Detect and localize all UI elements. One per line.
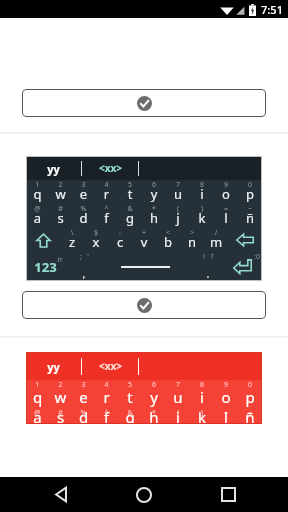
staticText: a [26,407,49,423]
staticText: k [190,209,214,227]
button[interactable]: Recent apps [205,477,251,512]
button[interactable]: # [49,408,72,424]
button[interactable]: \ [60,228,84,252]
button[interactable]: Backspace [228,228,262,252]
staticText: 8 [190,380,214,390]
button[interactable]: % [72,204,95,228]
staticText: h [142,407,166,423]
button[interactable]: 7 [166,180,190,204]
button[interactable]: ; [70,252,98,281]
button[interactable]: Home [121,477,167,512]
button[interactable]: % [72,408,95,424]
button[interactable]: 3 [72,180,95,204]
button[interactable]: * [142,408,166,424]
button[interactable]: $ [84,228,108,252]
button[interactable]: 3 [72,380,95,408]
button[interactable]: 0 [238,380,262,408]
button[interactable]: ( [166,408,190,424]
staticText: 3 [72,380,95,390]
button[interactable]: 7 [166,380,190,408]
button[interactable]: & [118,408,142,424]
staticText: x [84,233,108,251]
button[interactable]: yy [26,156,81,180]
button[interactable]: # [49,204,72,228]
staticText: ! [203,252,205,262]
button[interactable]: 4 [95,180,118,204]
button[interactable]: yy [26,352,81,380]
button[interactable]: 8 [190,380,214,408]
staticText: 7:51 [261,2,283,17]
button[interactable] [139,352,262,380]
staticText: s [49,209,72,227]
button[interactable]: < [156,228,180,252]
button[interactable]: 9 [214,380,238,408]
staticText: n [180,233,204,251]
button[interactable]: ^ [95,408,118,424]
staticText: 9 [214,180,238,190]
button[interactable]: 5 [118,380,142,408]
staticText: w [49,185,72,203]
button[interactable]: 6 [142,180,166,204]
button[interactable]: 1 [26,180,49,204]
button[interactable]: + [132,228,156,252]
button[interactable]: 9 [214,180,238,204]
staticText: , [70,266,98,281]
button[interactable]: ^ [95,204,118,228]
button[interactable]: 123 [26,252,70,281]
button[interactable]: ( [166,204,190,228]
button[interactable]: 5 [118,180,142,204]
button[interactable]: 6 [142,380,166,408]
button[interactable]: - [108,228,132,252]
staticText: ( [166,204,190,214]
staticText: q [26,387,49,407]
staticText: ~ [238,204,262,214]
staticText: * [142,408,166,418]
button[interactable]: = [214,408,238,424]
button[interactable]: Shift [26,228,60,252]
button[interactable]: @ [26,204,49,228]
staticText: - [108,228,132,238]
button[interactable]: ~ [238,408,262,424]
button[interactable]: 2 [49,180,72,204]
button[interactable]: Back [38,477,84,512]
button[interactable]: ! [193,252,223,281]
button[interactable] [139,156,262,180]
button[interactable]: <xx> [82,352,138,380]
staticText: 5 [118,380,142,390]
staticText: <xx> [99,359,122,373]
staticText: b [156,233,180,251]
staticText: 3 [72,180,95,190]
button[interactable]: 8 [190,180,214,204]
staticText: j [166,407,190,423]
button[interactable]: Apply this theme [22,291,266,319]
staticText: yy [47,161,60,176]
button[interactable]: * [142,204,166,228]
staticText: # [49,408,72,418]
staticText: j [166,209,190,227]
button[interactable]: <xx> [82,156,138,180]
button[interactable]: 4 [95,380,118,408]
staticText: ? [210,252,214,262]
staticText: 4 [95,380,118,390]
staticText: y [142,387,166,407]
button[interactable]: Apply this theme [22,89,266,117]
staticText: f [95,407,118,423]
staticText: # [49,204,72,214]
button[interactable]: 1 [26,380,49,408]
button[interactable]: 0 [238,180,262,204]
button[interactable]: @ [26,408,49,424]
staticText: o [214,387,238,407]
staticText: ) [190,204,214,214]
button[interactable]: :0 [223,252,262,281]
button[interactable]: & [118,204,142,228]
button[interactable]: / [204,228,228,252]
staticText: < [156,228,180,238]
button[interactable] [98,252,193,281]
staticText: 0 [238,380,262,390]
button[interactable]: = [214,204,238,228]
button[interactable]: ~ [238,204,262,228]
button[interactable]: ) [190,204,214,228]
button[interactable]: ) [190,408,214,424]
button[interactable]: 2 [49,380,72,408]
button[interactable]: > [180,228,204,252]
